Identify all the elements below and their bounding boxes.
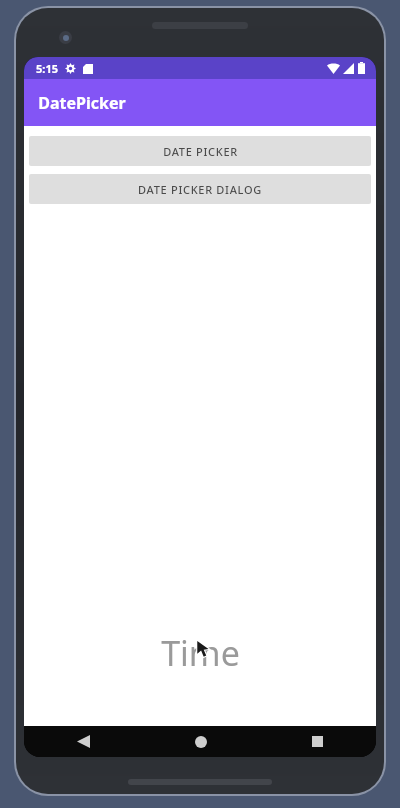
- staticText: DATE PICKER DIALOG: [138, 182, 262, 197]
- button[interactable]: Recent apps: [259, 726, 376, 757]
- button[interactable]: Home: [142, 726, 259, 757]
- staticText: Time: [161, 630, 240, 676]
- staticText: 5:15: [36, 61, 58, 76]
- button[interactable]: Back: [24, 726, 142, 757]
- button[interactable]: DATE PICKER DIALOG: [29, 174, 371, 204]
- staticText: DATE PICKER: [163, 144, 238, 159]
- button[interactable]: DATE PICKER: [29, 136, 371, 166]
- staticText: DatePicker: [38, 92, 126, 114]
